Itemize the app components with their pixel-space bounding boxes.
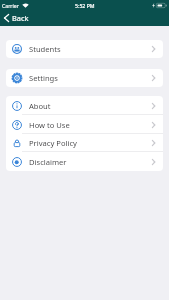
button[interactable]: Back bbox=[0, 11, 37, 25]
staticText: Students bbox=[29, 44, 61, 54]
button[interactable]: Settings bbox=[6, 69, 163, 87]
staticText: 5:52 PM bbox=[75, 2, 95, 9]
staticText: Carrier bbox=[2, 2, 19, 9]
button[interactable]: About bbox=[6, 96, 163, 115]
staticText: Back bbox=[12, 13, 29, 23]
button[interactable]: Students bbox=[6, 40, 163, 58]
staticText: How to Use bbox=[29, 120, 70, 130]
staticText: About bbox=[29, 101, 51, 111]
button[interactable]: How to Use bbox=[6, 115, 163, 134]
staticText: Disclaimer bbox=[29, 157, 67, 167]
button[interactable]: Disclaimer bbox=[6, 152, 163, 171]
staticText: Privacy Policy bbox=[29, 138, 77, 148]
button[interactable]: Privacy Policy bbox=[6, 134, 163, 152]
staticText: Settings bbox=[29, 73, 58, 83]
